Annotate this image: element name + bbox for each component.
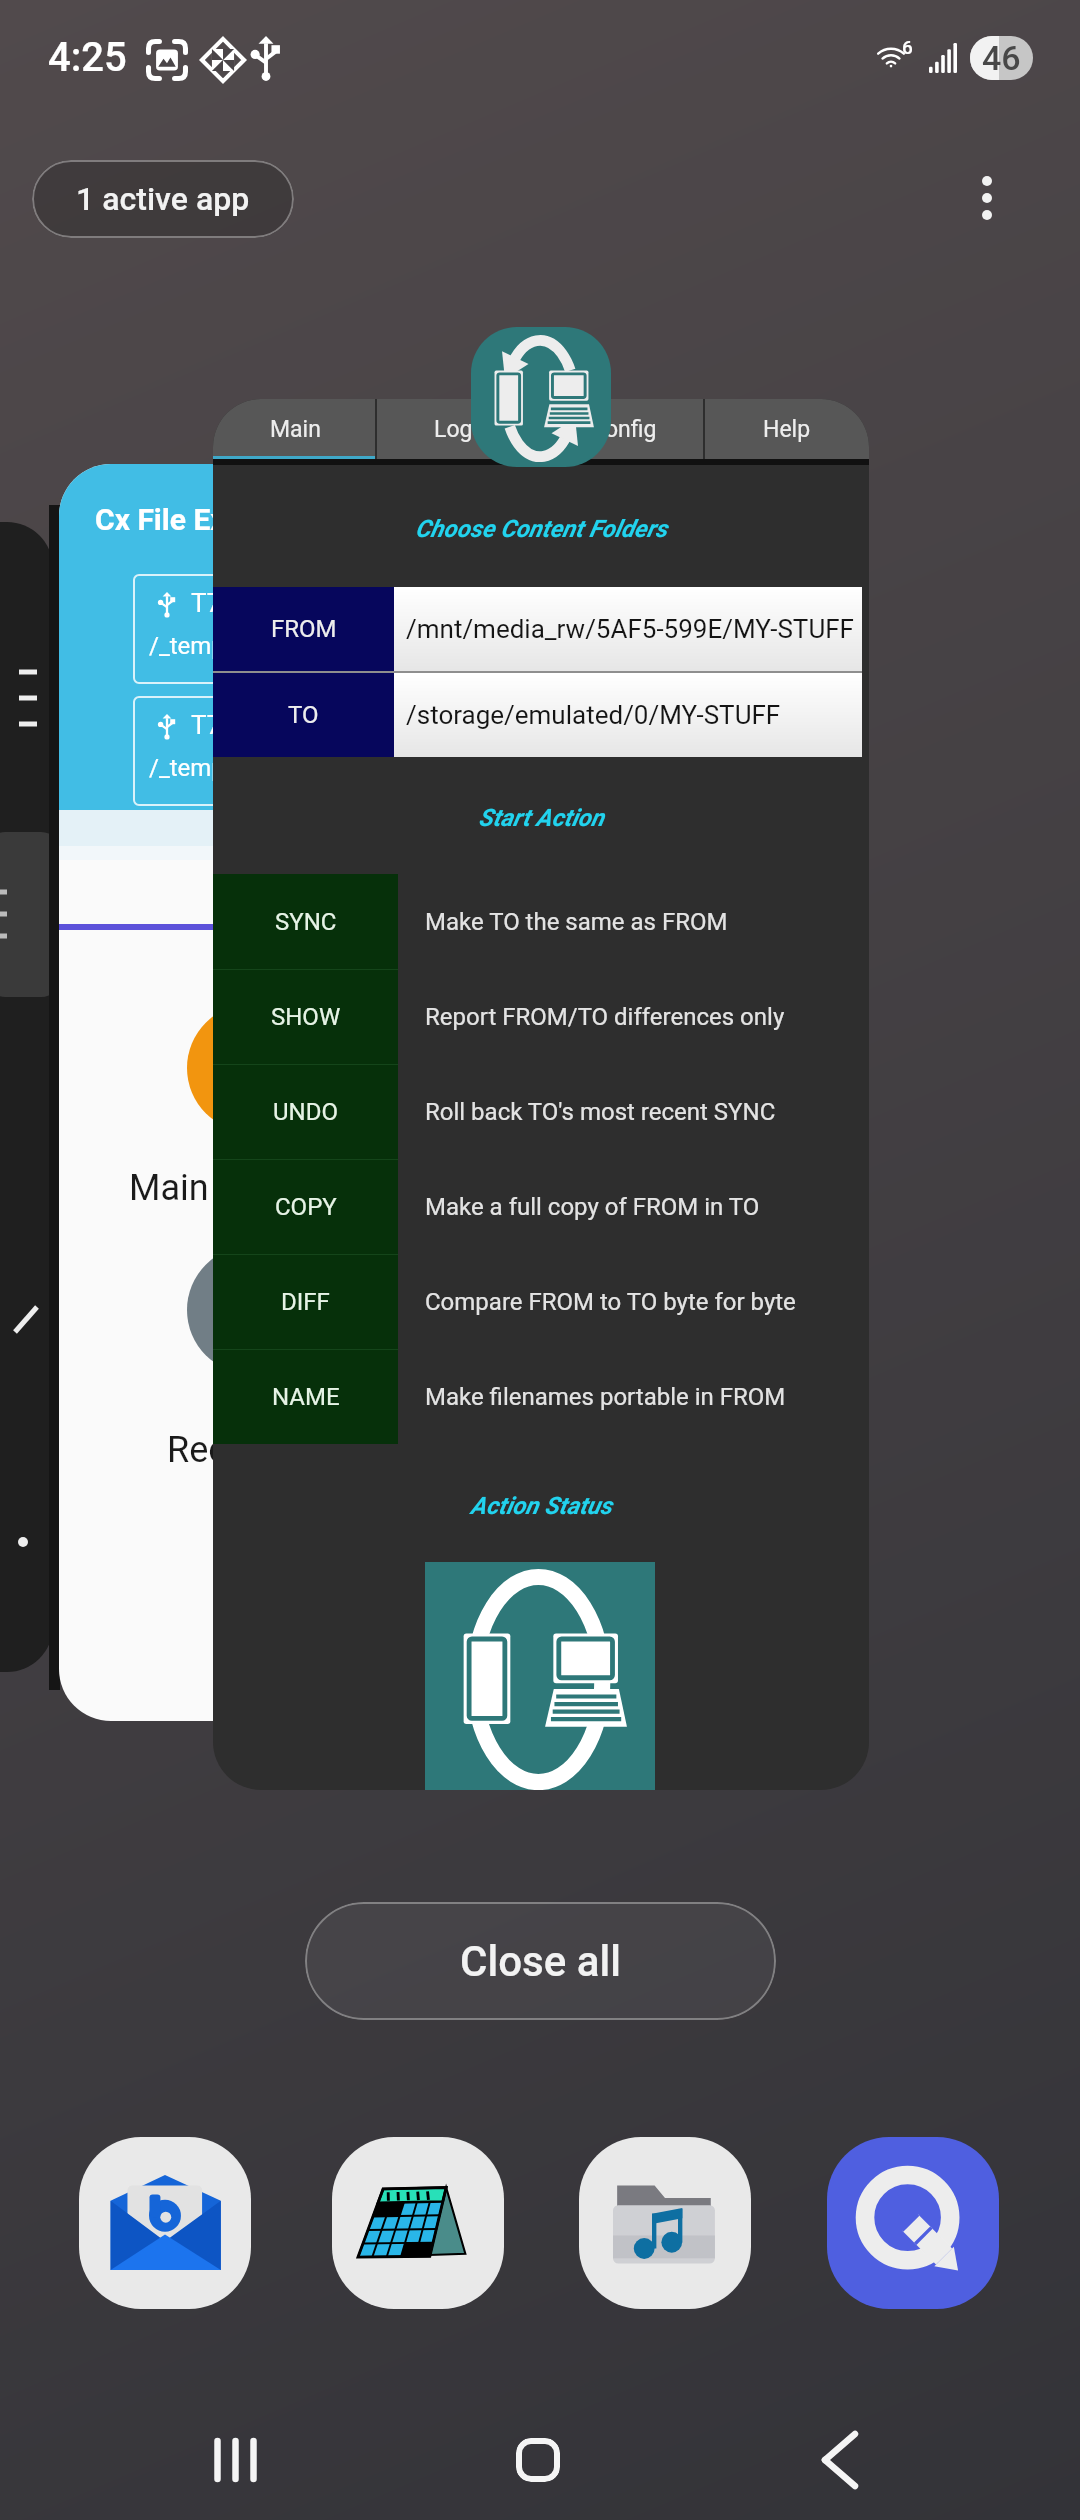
- button[interactable]: Home: [478, 2400, 598, 2520]
- button[interactable]: UNDO: [213, 1064, 869, 1159]
- button[interactable]: [0, 522, 53, 1672]
- button[interactable]: SYNC: [213, 874, 869, 969]
- button[interactable]: Close all: [305, 1902, 776, 2020]
- staticText: Config: [590, 416, 657, 443]
- staticText: 46: [982, 38, 1021, 78]
- staticText: DIFF: [281, 1288, 330, 1316]
- staticText: 4:25: [48, 34, 127, 81]
- button[interactable]: Music folder: [579, 2137, 751, 2309]
- button[interactable]: Main: [213, 399, 377, 459]
- staticText: FROM: [271, 615, 337, 643]
- staticText: TO: [288, 701, 319, 729]
- staticText: Action Status: [213, 1492, 869, 1520]
- button[interactable]: Back: [780, 2400, 900, 2520]
- button[interactable]: Help: [705, 399, 869, 459]
- staticText: Logs: [434, 416, 485, 443]
- staticText: 6: [902, 36, 913, 58]
- staticText: T7S-2TB: [191, 710, 291, 740]
- button[interactable]: 1 active app: [32, 160, 294, 238]
- button[interactable]: App icon: [471, 327, 611, 467]
- staticText: Roll back TO's most recent SYNC: [425, 1098, 776, 1126]
- button[interactable]: COPY: [213, 1159, 869, 1254]
- staticText: NAME: [272, 1383, 340, 1411]
- staticText: Make a full copy of FROM in TO: [425, 1193, 760, 1221]
- staticText: Close all: [460, 1937, 622, 1986]
- staticText: Recent Files: [167, 1429, 362, 1471]
- button[interactable]: Recent apps: [176, 2400, 296, 2520]
- staticText: 1 active app: [76, 180, 250, 218]
- staticText: Report FROM/TO differences only: [425, 1003, 785, 1031]
- staticText: /_temp-stuff: [149, 754, 282, 782]
- button[interactable]: SHOW: [213, 969, 869, 1064]
- staticText: Choose Content Folders: [213, 515, 869, 543]
- staticText: /_temp-stuff: [149, 632, 282, 660]
- staticText: Main Storage: [129, 1167, 342, 1209]
- button[interactable]: QuickEdit: [827, 2137, 999, 2309]
- staticText: Compare FROM to TO byte for byte: [425, 1288, 796, 1316]
- staticText: UNDO: [273, 1098, 338, 1126]
- button[interactable]: Config: [541, 399, 705, 459]
- staticText: COPY: [275, 1193, 337, 1221]
- staticText: Make filenames portable in FROM: [425, 1383, 786, 1411]
- button[interactable]: Cx File Explorer: [59, 464, 509, 1721]
- button[interactable]: BlueMail: [79, 2137, 251, 2309]
- staticText: Start Action: [213, 804, 869, 832]
- button[interactable]: Logs: [377, 399, 541, 459]
- button[interactable]: DIFF: [213, 1254, 869, 1349]
- staticText: SYNC: [275, 908, 337, 936]
- staticText: Help: [763, 416, 811, 443]
- button[interactable]: NAME: [213, 1349, 869, 1444]
- staticText: T7S-2TB: [191, 588, 291, 618]
- button[interactable]: Calendar: [332, 2137, 504, 2309]
- staticText: Make TO the same as FROM: [425, 908, 728, 936]
- button[interactable]: More options: [947, 158, 1027, 238]
- staticText: SHOW: [271, 1003, 341, 1031]
- staticText: Cx File Explorer: [95, 502, 306, 537]
- button[interactable]: Main: [213, 399, 869, 1790]
- staticText: /storage/emulated/0/MY-STUFF: [406, 700, 781, 730]
- staticText: /mnt/media_rw/5AF5-599E/MY-STUFF: [406, 614, 854, 644]
- staticText: Main: [270, 416, 321, 443]
